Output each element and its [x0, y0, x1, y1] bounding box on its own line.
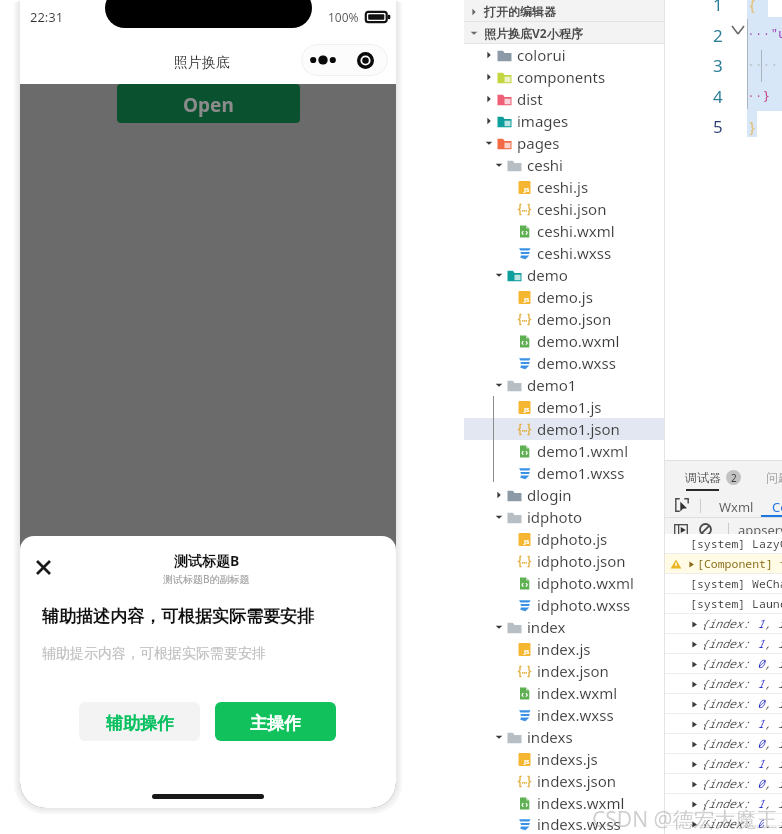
staticText: Co	[772, 498, 782, 516]
staticText: idphoto.wxss	[537, 595, 631, 615]
button[interactable]: Select element	[675, 498, 689, 512]
staticText: idphoto.js	[537, 529, 608, 549]
staticText: 打开的编辑器	[484, 4, 556, 19]
staticText: images	[517, 111, 569, 131]
staticText: demo1.json	[537, 419, 620, 439]
staticText: 0	[757, 736, 764, 752]
staticText: components	[517, 67, 606, 87]
staticText: idphoto	[527, 507, 583, 527]
staticText: 1	[757, 796, 764, 812]
staticText: index.wxss	[537, 705, 614, 725]
button[interactable]: pages	[464, 132, 665, 154]
button[interactable]: demo1	[464, 374, 665, 396]
button[interactable]: index.wxss	[464, 704, 665, 726]
button[interactable]: 调试器	[685, 464, 741, 490]
button[interactable]: ceshi	[464, 154, 665, 176]
staticText: [system] WeCha	[690, 576, 782, 592]
staticText: Wxml	[719, 498, 754, 516]
button[interactable]: Clear console	[699, 523, 712, 536]
staticText: colorui	[517, 45, 566, 65]
button[interactable]: idphoto.json	[464, 550, 665, 572]
button[interactable]: dlogin	[464, 484, 665, 506]
button[interactable]: JS	[464, 396, 665, 418]
staticText: appservi	[738, 521, 782, 539]
button[interactable]: Co	[772, 494, 782, 517]
button[interactable]: components	[464, 66, 665, 88]
button[interactable]: Close	[36, 560, 51, 575]
staticText: 5	[713, 115, 723, 138]
button[interactable]: indexs.json	[464, 770, 665, 792]
button[interactable]: colorui	[464, 44, 665, 66]
staticText: JS	[524, 538, 530, 546]
button[interactable]: ceshi.json	[464, 198, 665, 220]
staticText: , i	[764, 716, 782, 732]
staticText: demo1.js	[537, 397, 602, 417]
button[interactable]: demo1.wxml	[464, 440, 665, 462]
button[interactable]: More options	[301, 44, 388, 76]
staticText: demo.json	[537, 309, 612, 329]
staticText: {index:	[701, 676, 757, 692]
button[interactable]: dist	[464, 88, 665, 110]
staticText: idphoto.wxml	[537, 573, 634, 593]
staticText: demo1	[527, 375, 577, 395]
staticText: 1	[757, 636, 764, 652]
button[interactable]: demo.wxss	[464, 352, 665, 374]
staticText: 4	[713, 85, 723, 108]
staticText: 2	[731, 471, 737, 485]
button[interactable]: demo1.json	[464, 418, 665, 440]
staticText: 1	[757, 616, 764, 632]
button[interactable]: demo.json	[464, 308, 665, 330]
button[interactable]: 主操作	[215, 702, 336, 741]
staticText: 0	[757, 696, 764, 712]
staticText: demo.wxml	[537, 331, 620, 351]
staticText: 1	[757, 676, 764, 692]
staticText: 0	[757, 776, 764, 792]
button[interactable]: 问题	[766, 464, 782, 490]
button[interactable]: idphoto.wxss	[464, 594, 665, 616]
button[interactable]: demo1.wxss	[464, 462, 665, 484]
button[interactable]: demo.wxml	[464, 330, 665, 352]
staticText: indexs	[527, 727, 573, 747]
staticText: indexs.wxml	[537, 793, 625, 813]
staticText: 0	[757, 656, 764, 672]
staticText: pages	[517, 133, 560, 153]
button[interactable]: JS	[464, 528, 665, 550]
staticText: ····	[747, 55, 779, 73]
button[interactable]: 打开的编辑器	[464, 0, 665, 22]
button[interactable]: indexs	[464, 726, 665, 748]
staticText: , i	[764, 796, 782, 812]
staticText: {index:	[701, 736, 757, 752]
staticText: [Component] t	[697, 556, 782, 572]
button[interactable]: index	[464, 616, 665, 638]
button[interactable]: indexs.wxml	[464, 792, 665, 814]
button[interactable]: ceshi.wxss	[464, 242, 665, 264]
button[interactable]: demo	[464, 264, 665, 286]
staticText: 调试器	[685, 470, 721, 485]
button[interactable]: idphoto.wxml	[464, 572, 665, 594]
button[interactable]: idphoto	[464, 506, 665, 528]
staticText: 测试标题B的副标题	[163, 572, 250, 586]
staticText: demo1.wxss	[537, 463, 625, 483]
other: More options	[310, 54, 336, 66]
staticText: , i	[764, 776, 782, 792]
staticText: indexs.json	[537, 771, 617, 791]
button[interactable]: JS	[464, 176, 665, 198]
staticText: ceshi.js	[537, 177, 589, 197]
staticText: demo	[527, 265, 568, 285]
button[interactable]: 照片换底V2小程序	[464, 22, 665, 44]
button[interactable]: index.wxml	[464, 682, 665, 704]
button[interactable]: Toggle console	[674, 524, 688, 536]
staticText: , i	[764, 616, 782, 632]
button[interactable]: ceshi.wxml	[464, 220, 665, 242]
button[interactable]: JS	[464, 748, 665, 770]
button[interactable]: indexs.wxss	[464, 814, 665, 834]
button[interactable]: JS	[464, 638, 665, 660]
button[interactable]: index.json	[464, 660, 665, 682]
staticText: {index:	[701, 636, 757, 652]
staticText: {index:	[701, 756, 757, 772]
button[interactable]: Open	[117, 84, 300, 123]
button[interactable]: JS	[464, 286, 665, 308]
button[interactable]: images	[464, 110, 665, 132]
button[interactable]: 辅助操作	[79, 702, 200, 741]
button[interactable]: Wxml	[719, 494, 754, 517]
